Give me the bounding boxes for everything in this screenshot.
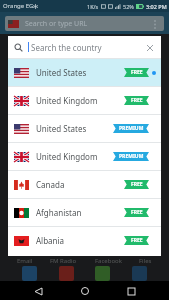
button[interactable]: Clear search <box>144 42 155 53</box>
staticText: FREE <box>131 209 143 216</box>
button[interactable]: App <box>59 266 74 281</box>
button[interactable]: Search or type URL <box>5 16 164 31</box>
staticText: United Kingdom <box>36 95 98 106</box>
staticText: FREE <box>131 237 143 244</box>
staticText: Files <box>139 257 152 265</box>
button[interactable]: App <box>132 266 147 281</box>
staticText: Search or type URL <box>25 19 88 29</box>
staticText: Search the country <box>31 42 102 53</box>
button[interactable]: United States <box>8 59 161 86</box>
button[interactable]: App <box>22 266 37 281</box>
button[interactable]: Search the country <box>8 36 161 58</box>
button[interactable]: Afghanistan <box>8 199 161 226</box>
staticText: Orange EG <box>3 2 34 10</box>
staticText: FREE <box>131 69 143 76</box>
staticText: Facebook <box>95 257 122 265</box>
staticText: Canada <box>36 179 65 190</box>
staticText: 52% <box>123 3 134 10</box>
staticText: FM Radio <box>50 257 77 265</box>
button[interactable]: United Kingdom <box>8 143 161 170</box>
staticText: PREMIUM <box>119 125 144 132</box>
staticText: 3:02 PM <box>146 3 167 10</box>
button[interactable]: Home <box>76 282 94 300</box>
button[interactable]: Canada <box>8 171 161 198</box>
staticText: United Kingdom <box>36 151 98 162</box>
staticText: Email <box>17 257 33 265</box>
button[interactable]: United Kingdom <box>8 87 161 114</box>
button[interactable]: App <box>95 266 110 281</box>
button[interactable]: Recents <box>122 282 140 300</box>
staticText: United States <box>36 67 87 78</box>
staticText: 1K/s <box>87 3 99 10</box>
staticText: FREE <box>131 181 143 188</box>
staticText: PREMIUM <box>119 153 144 160</box>
button[interactable]: United States <box>8 115 161 142</box>
staticText: Afghanistan <box>36 207 82 218</box>
button[interactable]: More options <box>149 18 161 30</box>
staticText: United States <box>36 123 87 134</box>
staticText: FREE <box>131 97 143 104</box>
button[interactable]: Albania <box>8 227 161 254</box>
button[interactable]: Back <box>29 282 47 300</box>
staticText: Albania <box>36 235 65 246</box>
